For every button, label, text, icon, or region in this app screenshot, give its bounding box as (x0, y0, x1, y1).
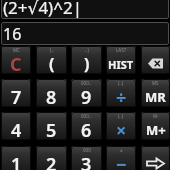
button[interactable]: MS (141, 79, 170, 107)
staticText: × (116, 118, 127, 140)
staticText: M+ (146, 121, 166, 139)
button[interactable]: 16 (1, 22, 169, 45)
staticText: LAST (116, 47, 127, 53)
staticText: 9 (81, 85, 92, 107)
staticText: (..) (118, 113, 124, 119)
staticText: 3 (81, 152, 92, 170)
button[interactable] (141, 46, 170, 74)
button[interactable]: 1 (1, 146, 31, 170)
button[interactable]: M- (141, 112, 170, 140)
staticText: 4 (11, 118, 22, 140)
staticText: (..) (118, 80, 124, 86)
button[interactable]: 4 (1, 112, 31, 140)
staticText: 7 (11, 85, 22, 107)
staticText: − (116, 152, 127, 170)
staticText: ( (49, 53, 55, 74)
button[interactable]: 000.. (71, 112, 102, 140)
staticText: (2+√4)^2| (3, 0, 83, 19)
button[interactable]: MC (1, 46, 31, 74)
button[interactable]: 7 (1, 79, 31, 107)
staticText: 8 (46, 85, 57, 107)
button[interactable]: 5 (36, 112, 67, 140)
button[interactable]: 000 (71, 146, 102, 170)
staticText: ) (84, 53, 90, 74)
button[interactable]: 2 (36, 146, 67, 170)
button[interactable]: (2+√4)^2| (1, 0, 169, 19)
staticText: 000.. (81, 113, 92, 119)
staticText: (.. (50, 47, 54, 53)
staticText: ÷ (116, 85, 127, 107)
staticText: ± (120, 147, 123, 153)
button[interactable]: (..) (106, 112, 136, 140)
staticText: M- (153, 113, 159, 119)
button[interactable]: 000.. (71, 79, 102, 107)
staticText: 1 (11, 152, 22, 170)
staticText: MR (145, 88, 166, 106)
button[interactable] (141, 146, 170, 170)
staticText: 2 (46, 152, 57, 170)
button[interactable]: LAST (106, 46, 136, 74)
staticText: ..) (85, 47, 89, 53)
button[interactable]: (.. (36, 46, 67, 74)
button[interactable]: ..) (71, 46, 102, 74)
staticText: 6 (81, 118, 92, 140)
staticText: 000.. (81, 80, 92, 86)
button[interactable]: ± (106, 146, 136, 170)
staticText: MS (152, 80, 159, 86)
button[interactable]: (..) (106, 79, 136, 107)
staticText: C (10, 52, 22, 74)
staticText: HIST (108, 57, 134, 72)
staticText: 000 (83, 147, 91, 153)
button[interactable]: 8 (36, 79, 67, 107)
staticText: 5 (46, 118, 57, 140)
staticText: MC (13, 47, 20, 53)
staticText: 16 (3, 23, 22, 45)
